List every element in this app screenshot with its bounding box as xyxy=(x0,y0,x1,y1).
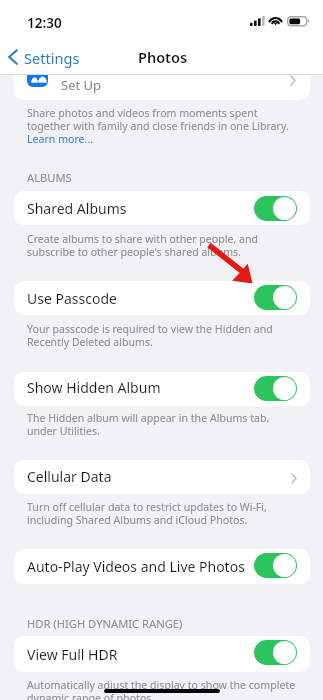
staticText: Settings xyxy=(24,48,80,68)
staticText: Shared Albums xyxy=(27,199,127,218)
button[interactable] xyxy=(14,64,310,100)
staticText: View Full HDR xyxy=(27,645,118,664)
button[interactable] xyxy=(14,549,310,584)
staticText: Recently Deleted albums. xyxy=(27,335,153,349)
staticText: Use Passcode xyxy=(27,289,117,308)
staticText: Your passcode is required to view the Hi… xyxy=(27,322,273,336)
staticText: together with family and close friends i… xyxy=(27,119,289,133)
button[interactable]: Settings xyxy=(4,45,84,69)
button[interactable]: Learn more... xyxy=(27,132,94,146)
button[interactable]: Toggle switch xyxy=(254,196,297,221)
button[interactable] xyxy=(14,372,310,406)
button[interactable] xyxy=(14,191,310,225)
staticText: The Hidden album will appear in the Albu… xyxy=(27,411,270,425)
staticText: Create albums to share with other people… xyxy=(27,232,259,246)
staticText: HDR (HIGH DYNAMIC RANGE) xyxy=(27,616,183,631)
button[interactable]: Toggle switch xyxy=(254,640,297,665)
staticText: Show Hidden Album xyxy=(27,378,161,397)
staticText: ALBUMS xyxy=(27,170,72,185)
button[interactable]: Toggle switch xyxy=(254,285,297,310)
staticText: dynamic range of photos. xyxy=(27,691,155,700)
staticText: under Utilities. xyxy=(27,424,100,438)
staticText: subscribe to other people's shared album… xyxy=(27,245,241,259)
staticText: including Shared Albums and iCloud Photo… xyxy=(27,513,248,527)
staticText: 12:30 xyxy=(27,14,62,32)
button[interactable] xyxy=(14,460,310,494)
button[interactable]: Toggle switch xyxy=(254,376,297,401)
button[interactable] xyxy=(14,281,310,315)
staticText: Cellular Data xyxy=(27,467,112,486)
staticText: Auto-Play Videos and Live Photos xyxy=(27,557,245,576)
button[interactable]: Toggle switch xyxy=(254,553,297,578)
button[interactable] xyxy=(14,636,310,672)
staticText: Automatically adjust the display to show… xyxy=(27,678,296,692)
staticText: Set Up xyxy=(61,76,102,94)
staticText: Turn off cellular data to restrict updat… xyxy=(27,500,267,514)
staticText: Photos xyxy=(138,47,188,67)
staticText: Share photos and videos from moments spe… xyxy=(27,106,258,120)
